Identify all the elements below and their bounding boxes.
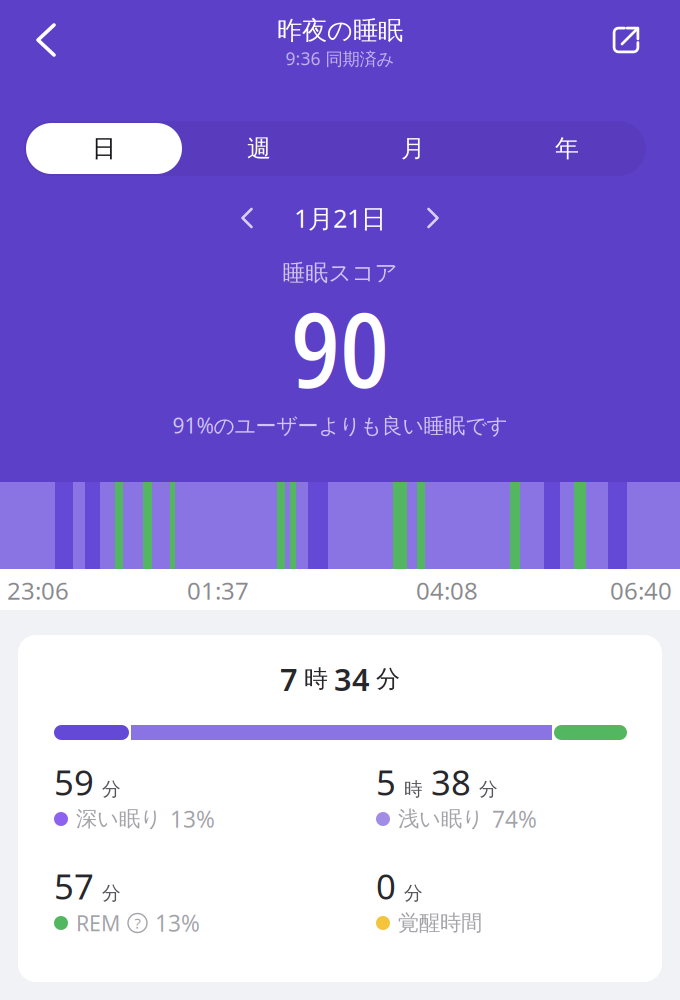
staticText: 01:37 xyxy=(187,575,249,606)
staticText: 月 xyxy=(401,134,425,163)
staticText: 分 xyxy=(479,778,498,801)
staticText: 0 xyxy=(376,863,396,909)
button[interactable]: 月 xyxy=(336,123,490,174)
button[interactable]: Previous day xyxy=(224,195,270,241)
staticText: 13% xyxy=(170,804,215,834)
staticText: 06:40 xyxy=(610,575,672,606)
button[interactable]: 年 xyxy=(490,123,644,174)
staticText: 週 xyxy=(247,134,271,163)
button[interactable]: 日 xyxy=(26,123,182,174)
staticText: ? xyxy=(134,913,140,933)
staticText: 睡眠スコア xyxy=(282,259,397,287)
staticText: 91%のユーザーよりも良い睡眠です xyxy=(172,411,507,439)
staticText: 90 xyxy=(291,278,389,418)
staticText: 時 xyxy=(404,778,423,801)
staticText: 7 xyxy=(280,659,298,699)
staticText: 日 xyxy=(92,134,116,163)
staticText: 分 xyxy=(404,882,423,905)
staticText: 5 xyxy=(376,759,396,805)
staticText: 分 xyxy=(102,778,121,801)
staticText: 年 xyxy=(555,134,579,163)
staticText: 深い眠り xyxy=(76,806,162,832)
staticText: 38 xyxy=(431,759,471,805)
staticText: 浅い眠り xyxy=(398,806,484,832)
staticText: 9:36 同期済み xyxy=(285,47,394,70)
staticText: 74% xyxy=(492,804,537,834)
button[interactable]: 週 xyxy=(182,123,336,174)
staticText: 覚醒時間 xyxy=(398,910,482,936)
button[interactable]: Back xyxy=(14,10,78,70)
staticText: 分 xyxy=(376,664,400,694)
button[interactable]: Next day xyxy=(410,195,456,241)
button[interactable]: Share xyxy=(596,10,656,70)
staticText: 59 xyxy=(54,759,94,805)
staticText: 昨夜の睡眠 xyxy=(277,15,403,46)
staticText: 34 xyxy=(334,659,370,699)
staticText: 1月21日 xyxy=(294,201,386,235)
staticText: 04:08 xyxy=(416,575,478,606)
staticText: 23:06 xyxy=(7,575,69,606)
staticText: 時 xyxy=(304,664,328,694)
staticText: 13% xyxy=(155,908,200,938)
staticText: REM xyxy=(76,909,120,937)
staticText: 分 xyxy=(102,882,121,905)
staticText: 57 xyxy=(54,863,94,909)
